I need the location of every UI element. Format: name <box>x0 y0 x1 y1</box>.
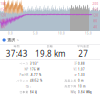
staticText: - <box>30 85 31 88</box>
staticText: 距離 <box>47 45 53 48</box>
staticText: 3'03" <box>30 62 38 65</box>
staticText: -8.77 % <box>30 73 41 77</box>
staticText: 200 <box>92 2 98 6</box>
staticText: 80 <box>93 19 97 23</box>
staticText: 40 <box>93 25 97 29</box>
staticText: 1.33 <box>78 73 85 77</box>
staticText: 27 <box>78 48 88 59</box>
staticText: IF <box>74 62 76 65</box>
staticText: Pw:HR <box>19 73 28 77</box>
staticText: 15.0 <box>85 32 92 35</box>
staticText: 0.88 <box>78 62 85 65</box>
staticText: 160 <box>92 8 98 11</box>
staticText: W/kg <box>70 90 76 94</box>
staticText: 0 m <box>78 79 83 82</box>
staticText: バランス <box>16 79 28 82</box>
staticText: 176 W <box>30 68 39 71</box>
staticText: 150 <box>0 8 6 11</box>
staticText: TSS <box>25 85 28 88</box>
staticText: 平均速度 <box>77 45 89 48</box>
staticText: 48/52 % <box>30 79 42 82</box>
staticText: 選択 <box>7 37 15 42</box>
staticText: 90 <box>1 19 5 23</box>
staticText: 84 kJ <box>30 90 37 94</box>
staticText: > <box>17 37 19 43</box>
staticText: 高度上昇 <box>64 79 76 82</box>
staticText: 0.0 <box>8 32 13 35</box>
staticText: 高度下降 <box>64 85 76 88</box>
staticText: 10 m <box>78 85 85 88</box>
staticText: 1.07 <box>78 68 85 71</box>
staticText: VI <box>73 68 76 71</box>
staticText: 60 <box>1 25 5 29</box>
staticText: 180 <box>0 2 6 6</box>
staticText: 37:43 <box>6 48 28 59</box>
staticText: 19.8 km <box>35 48 65 59</box>
staticText: 時間 <box>14 45 20 48</box>
staticText: 仕事量 <box>19 90 28 94</box>
staticText: 0.84 W/kg <box>78 90 92 94</box>
staticText: ペース <box>19 62 28 65</box>
staticText: 10.0 <box>58 32 65 35</box>
staticText: 5.0 <box>33 32 38 35</box>
staticText: 120 <box>0 14 6 17</box>
staticText: NP <box>24 68 28 71</box>
staticText: EF <box>74 73 76 77</box>
staticText: 120 <box>92 14 98 17</box>
button[interactable]: 選択 <box>0 36 100 44</box>
